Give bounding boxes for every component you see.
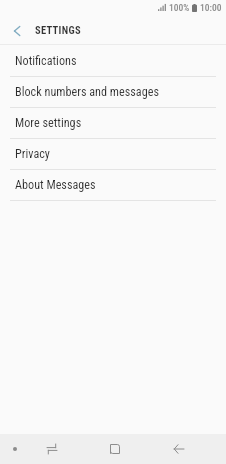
button[interactable]: Notifications <box>0 45 226 76</box>
staticText: Privacy <box>15 147 50 161</box>
staticText: 100% <box>169 2 190 13</box>
button[interactable]: Navigate up <box>0 15 34 44</box>
staticText: Block numbers and messages <box>15 85 159 99</box>
button[interactable]: Back <box>159 434 199 464</box>
button[interactable]: Recent apps <box>32 434 72 464</box>
staticText: About Messages <box>15 178 96 192</box>
button[interactable]: Show navigation buttons <box>1 434 29 464</box>
staticText: 10:00 <box>200 2 222 13</box>
button[interactable]: More settings <box>0 108 226 138</box>
button[interactable]: Home <box>95 434 135 464</box>
staticText: SETTINGS <box>35 24 81 36</box>
staticText: Notifications <box>15 54 77 68</box>
button[interactable]: Privacy <box>0 139 226 169</box>
button[interactable]: About Messages <box>0 170 226 200</box>
staticText: More settings <box>15 116 82 130</box>
button[interactable]: Block numbers and messages <box>0 77 226 107</box>
